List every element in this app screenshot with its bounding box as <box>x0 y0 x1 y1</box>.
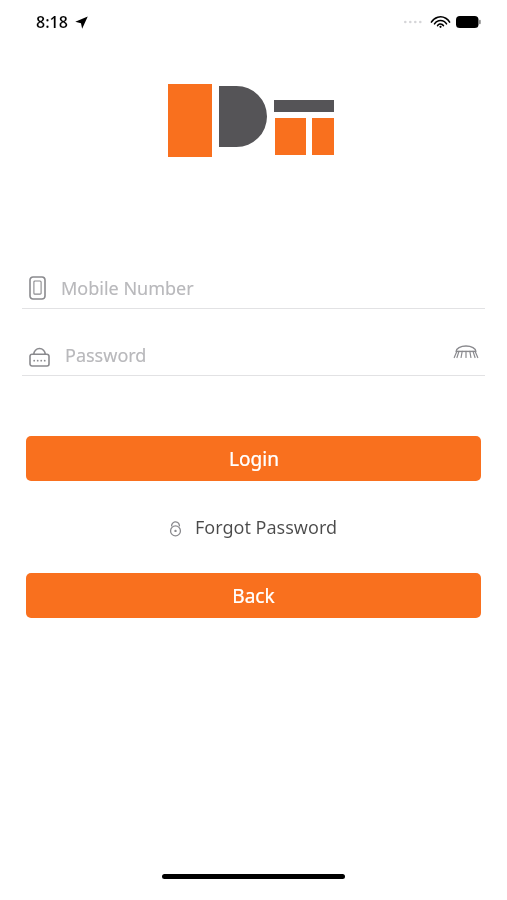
button[interactable]: Forgot Password <box>161 511 346 544</box>
staticText: Password <box>65 343 147 368</box>
button[interactable]: Login <box>26 436 481 481</box>
button[interactable]: Back <box>26 573 481 618</box>
staticText: Mobile Number <box>61 276 194 301</box>
button[interactable]: Show password <box>453 346 485 364</box>
staticText: Login <box>229 446 279 472</box>
button[interactable]: Mobile Number <box>22 270 485 309</box>
staticText: Back <box>232 583 275 609</box>
staticText: Forgot Password <box>195 515 338 540</box>
staticText: 8:18 <box>36 11 68 33</box>
button[interactable]: Password <box>22 337 485 376</box>
